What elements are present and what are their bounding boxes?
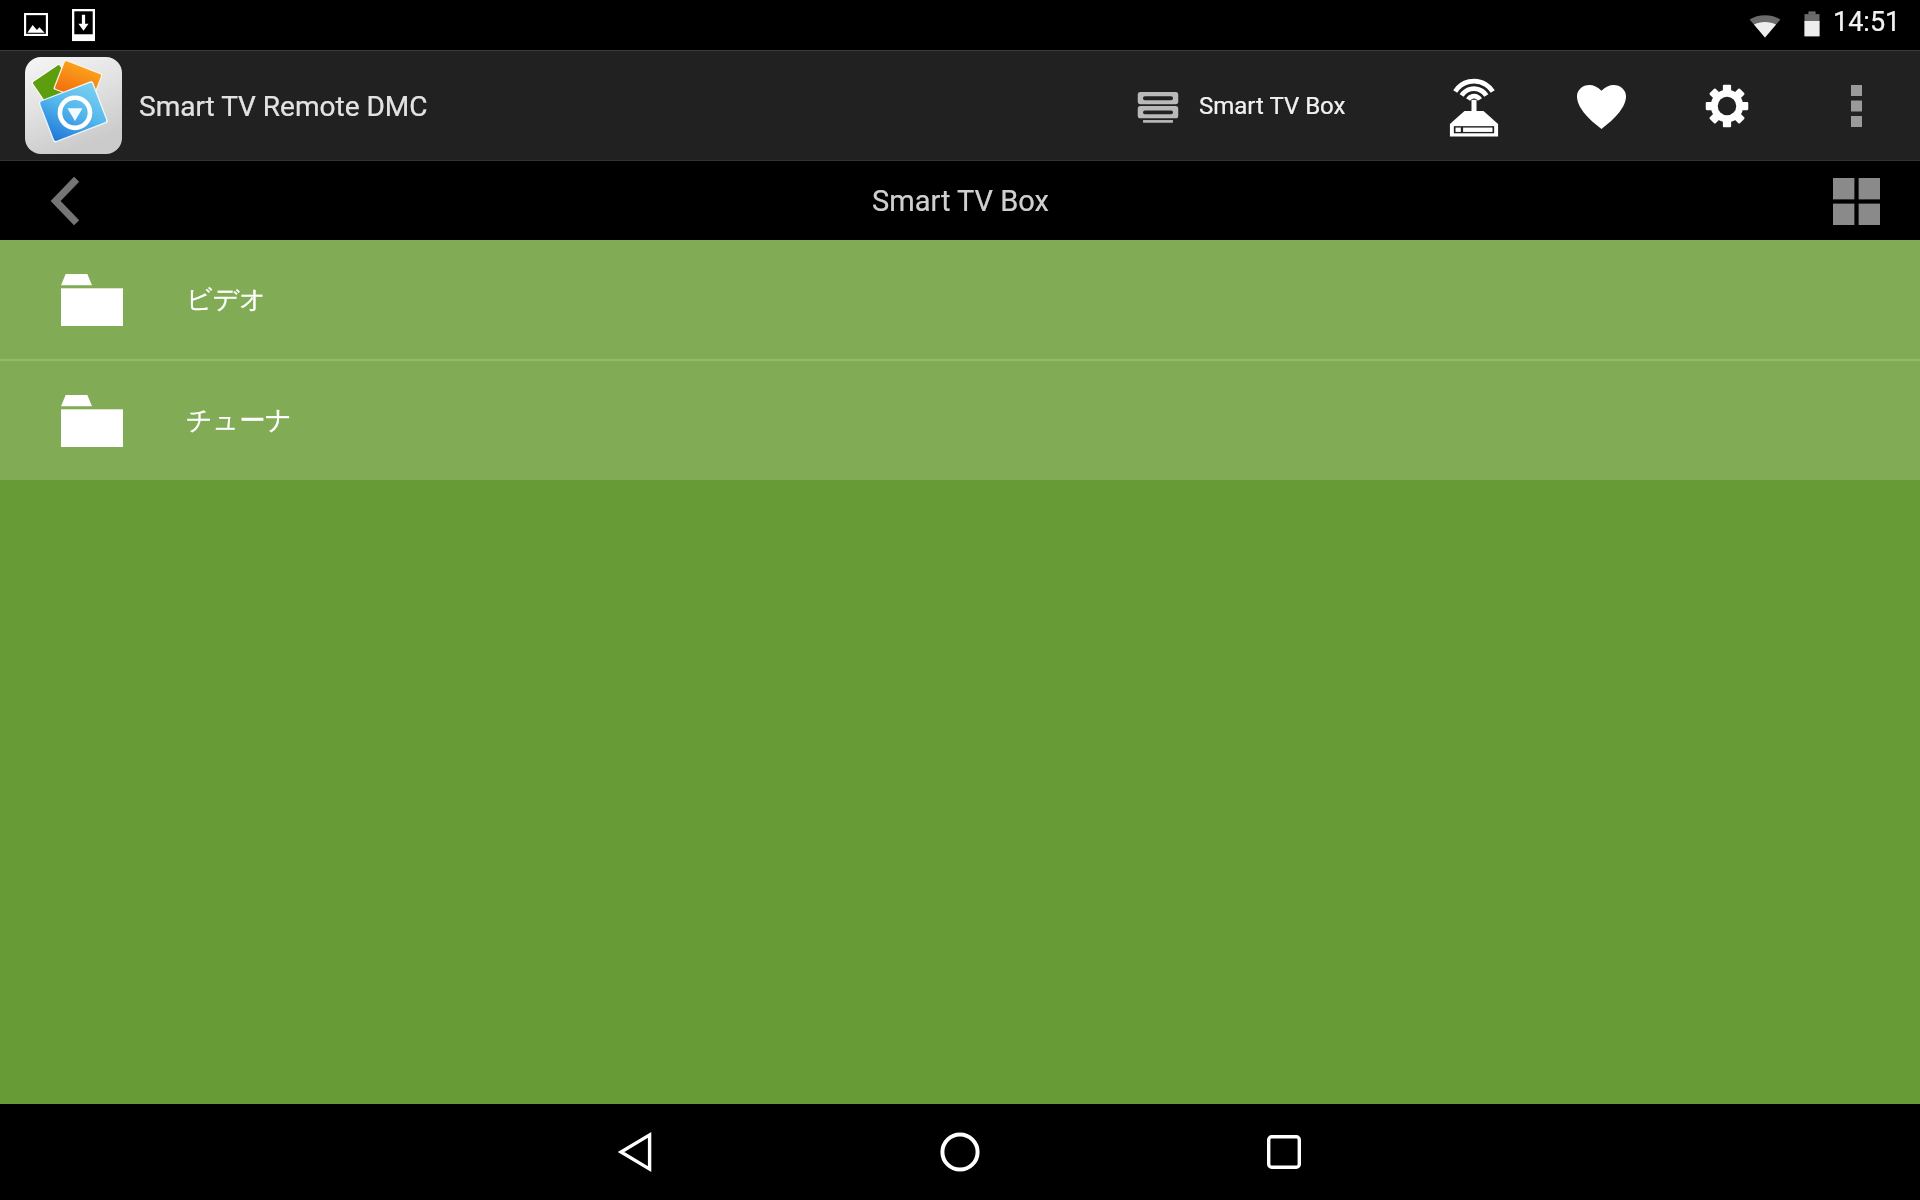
button[interactable]: Home bbox=[864, 1104, 1056, 1200]
staticText: Smart TV Remote DMC bbox=[139, 90, 428, 123]
button[interactable]: チューナ bbox=[0, 361, 1920, 480]
button[interactable]: Network bbox=[1418, 50, 1530, 161]
staticText: チューナ bbox=[186, 404, 292, 437]
staticText: 14:51 bbox=[1833, 6, 1901, 38]
staticText: ビデオ bbox=[186, 283, 266, 316]
button[interactable]: Settings bbox=[1671, 50, 1783, 161]
button[interactable]: More options bbox=[1808, 50, 1904, 161]
button[interactable]: Smart TV Box bbox=[1120, 50, 1362, 161]
staticText: Smart TV Box bbox=[872, 184, 1049, 218]
button[interactable]: Back bbox=[540, 1104, 732, 1200]
button[interactable]: ビデオ bbox=[0, 240, 1920, 359]
button[interactable]: Smart TV Remote DMC bbox=[25, 57, 122, 154]
button[interactable]: Grid view bbox=[1792, 161, 1920, 240]
button[interactable]: Back bbox=[0, 161, 128, 240]
button[interactable]: Recents bbox=[1188, 1104, 1380, 1200]
button[interactable]: Favorites bbox=[1545, 50, 1657, 161]
staticText: Smart TV Box bbox=[1199, 92, 1346, 120]
